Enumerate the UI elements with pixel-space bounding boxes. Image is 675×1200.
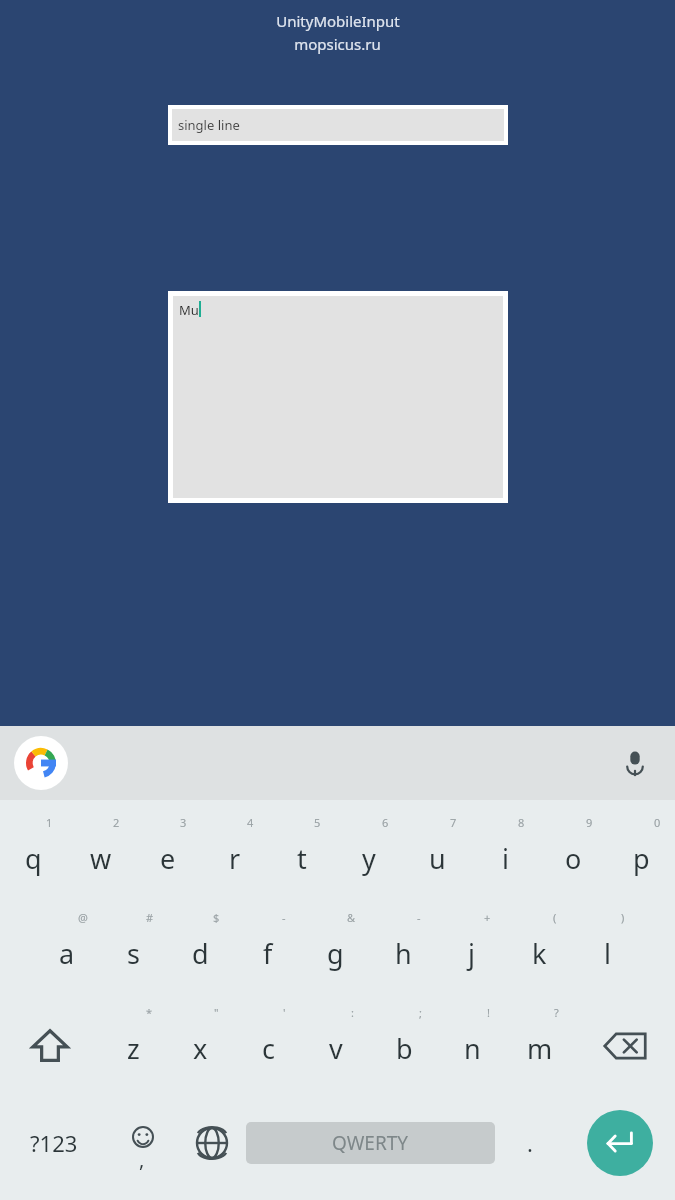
button[interactable]: f — [234, 903, 301, 998]
button[interactable]: single line — [172, 109, 504, 141]
button[interactable]: Change keyboard language — [177, 1093, 246, 1193]
staticText: b — [396, 1030, 413, 1067]
button[interactable]: l — [573, 903, 641, 998]
staticText: ) — [621, 910, 625, 925]
button[interactable]: g — [301, 903, 369, 998]
staticText: p — [633, 840, 650, 877]
staticText: 1 — [46, 815, 53, 830]
button[interactable]: b — [370, 998, 438, 1093]
staticText: 6 — [382, 815, 389, 830]
button[interactable]: k — [505, 903, 573, 998]
staticText: - — [417, 910, 421, 925]
button[interactable]: a — [33, 903, 100, 998]
staticText: l — [604, 935, 611, 972]
button[interactable]: z — [100, 998, 167, 1093]
button[interactable]: y — [335, 808, 403, 903]
button[interactable]: x — [167, 998, 234, 1093]
button[interactable]: Google search — [14, 736, 68, 790]
staticText: + — [484, 910, 491, 925]
staticText: ? — [554, 1005, 559, 1020]
staticText: 2 — [113, 815, 120, 830]
staticText: " — [214, 1005, 219, 1020]
staticText: ; — [419, 1005, 422, 1020]
staticText: Mu — [179, 301, 199, 319]
button[interactable]: Emoji — [108, 1093, 177, 1193]
button[interactable]: w — [67, 808, 134, 903]
button[interactable]: j — [437, 903, 505, 998]
staticText: 7 — [450, 815, 457, 830]
staticText: d — [192, 935, 209, 972]
button[interactable]: c — [234, 998, 302, 1093]
staticText: h — [395, 935, 412, 972]
button[interactable]: o — [539, 808, 607, 903]
staticText: 0 — [654, 815, 661, 830]
staticText: 4 — [247, 815, 254, 830]
staticText: QWERTY — [332, 1130, 409, 1156]
button[interactable]: i — [471, 808, 539, 903]
button[interactable]: s — [100, 903, 167, 998]
button[interactable]: Enter — [587, 1110, 653, 1176]
button[interactable]: q — [0, 808, 67, 903]
button[interactable]: r — [201, 808, 268, 903]
staticText: v — [329, 1030, 343, 1067]
staticText: : — [351, 1005, 354, 1020]
button[interactable]: h — [369, 903, 437, 998]
button[interactable]: m — [506, 998, 574, 1093]
staticText: r — [229, 840, 241, 877]
button[interactable]: Mu — [173, 296, 503, 498]
staticText: g — [327, 935, 344, 972]
staticText: a — [59, 935, 75, 972]
button[interactable]: Voice input — [613, 741, 657, 785]
staticText: ' — [283, 1005, 286, 1020]
staticText: n — [464, 1030, 481, 1067]
staticText: single line — [178, 116, 240, 134]
staticText: . — [527, 1128, 533, 1158]
staticText: z — [127, 1030, 140, 1067]
staticText: x — [193, 1030, 208, 1067]
staticText: @ — [78, 910, 88, 925]
staticText: e — [160, 840, 176, 877]
button[interactable]: t — [268, 808, 335, 903]
staticText: w — [90, 840, 112, 877]
staticText: t — [297, 840, 307, 877]
button[interactable]: n — [438, 998, 506, 1093]
staticText: # — [146, 910, 154, 925]
staticText: * — [146, 1005, 153, 1020]
staticText: c — [262, 1030, 275, 1067]
staticText: k — [532, 935, 547, 972]
staticText: f — [263, 935, 273, 972]
staticText: j — [468, 935, 475, 972]
staticText: 9 — [586, 815, 593, 830]
staticText: ( — [553, 910, 557, 925]
staticText: o — [565, 840, 582, 877]
button[interactable]: p — [607, 808, 675, 903]
staticText: q — [25, 840, 42, 877]
staticText: y — [362, 840, 376, 877]
staticText: - — [282, 910, 286, 925]
button[interactable]: u — [403, 808, 471, 903]
staticText: $ — [213, 910, 220, 925]
staticText: & — [347, 910, 356, 925]
button[interactable]: QWERTY — [246, 1122, 495, 1164]
button[interactable]: Backspace — [574, 998, 675, 1093]
staticText: ?123 — [30, 1128, 78, 1158]
button[interactable]: d — [167, 903, 234, 998]
staticText: u — [429, 840, 446, 877]
button[interactable]: e — [134, 808, 201, 903]
staticText: m — [527, 1030, 553, 1067]
button[interactable]: ?123 — [0, 1093, 108, 1193]
button[interactable]: . — [495, 1093, 564, 1193]
staticText: s — [127, 935, 140, 972]
staticText: i — [502, 840, 509, 877]
staticText: 5 — [314, 815, 321, 830]
staticText: ! — [487, 1005, 490, 1020]
staticText: UnityMobileInput — [276, 11, 400, 31]
staticText: 3 — [180, 815, 187, 830]
staticText: , — [139, 1146, 145, 1173]
button[interactable]: Shift — [0, 998, 100, 1093]
staticText: 8 — [518, 815, 525, 830]
button[interactable]: v — [302, 998, 370, 1093]
staticText: mopsicus.ru — [294, 34, 381, 54]
